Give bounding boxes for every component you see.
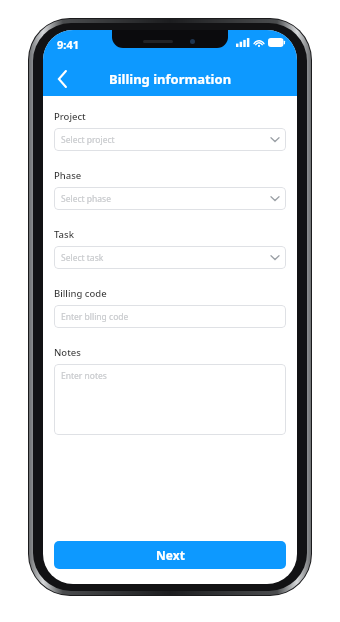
button[interactable]: Next xyxy=(54,541,286,569)
staticText: Billing information xyxy=(109,70,232,88)
button[interactable]: Back xyxy=(49,66,75,92)
staticText: Enter blling code xyxy=(61,311,129,323)
staticText: Next xyxy=(156,547,185,563)
button[interactable]: Enter notes xyxy=(54,364,286,435)
staticText: Notes xyxy=(54,346,81,359)
staticText: Billing code xyxy=(54,287,107,300)
staticText: Phase xyxy=(54,169,82,182)
staticText: Enter notes xyxy=(61,370,107,382)
staticText: Select phase xyxy=(61,193,271,205)
staticText: 9:41 xyxy=(57,37,79,52)
button[interactable]: Select project xyxy=(54,128,286,151)
staticText: Select project xyxy=(61,134,271,146)
button[interactable]: Select phase xyxy=(54,187,286,210)
staticText: Project xyxy=(54,110,86,123)
staticText: Select task xyxy=(61,252,271,264)
staticText: Task xyxy=(54,228,74,241)
button[interactable]: Select task xyxy=(54,246,286,269)
button[interactable]: Enter blling code xyxy=(54,305,286,328)
